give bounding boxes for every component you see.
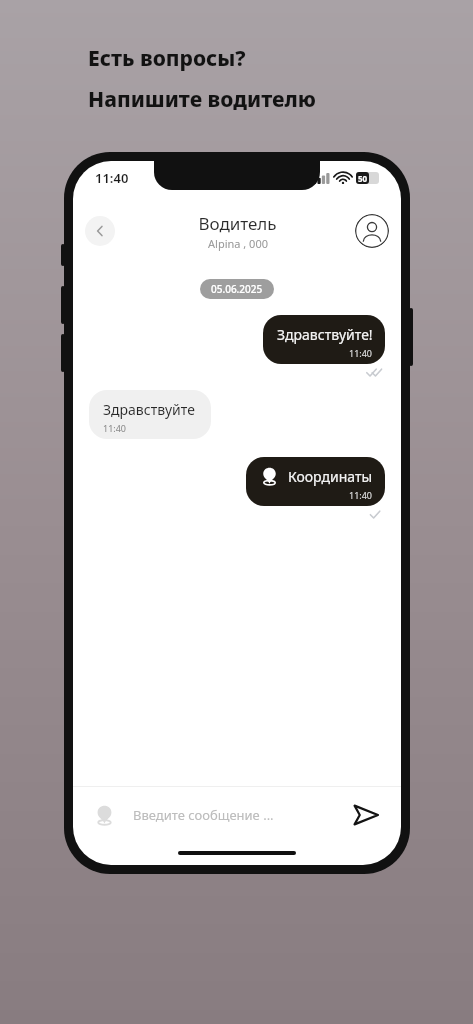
staticText: 11:40 bbox=[103, 422, 127, 434]
staticText: Водитель bbox=[198, 212, 277, 235]
staticText: Координаты bbox=[288, 467, 373, 486]
button[interactable]: Back bbox=[85, 216, 115, 246]
staticText: 11:40 bbox=[349, 489, 373, 501]
staticText: Введите сообщение ... bbox=[133, 806, 274, 824]
staticText: 11:40 bbox=[95, 169, 129, 187]
button[interactable]: Profile bbox=[355, 214, 389, 248]
staticText: Здравствуйте bbox=[103, 400, 195, 419]
staticText: Напишите водителю bbox=[88, 85, 316, 114]
button[interactable]: Здравствуйте bbox=[89, 390, 211, 439]
staticText: Есть вопросы? bbox=[88, 44, 246, 73]
button[interactable]: Здравствуйте! bbox=[263, 315, 385, 364]
button[interactable]: Send location bbox=[89, 800, 119, 830]
staticText: 50 bbox=[358, 173, 368, 184]
staticText: Здравствуйте! bbox=[277, 325, 373, 344]
button[interactable]: Введите сообщение ... bbox=[133, 806, 337, 824]
button[interactable]: Send bbox=[347, 796, 385, 834]
button[interactable]: Координаты bbox=[246, 457, 385, 506]
staticText: Alpina , 000 bbox=[208, 236, 268, 251]
staticText: 11:40 bbox=[349, 347, 373, 359]
staticText: 05.06.2025 bbox=[211, 282, 263, 296]
